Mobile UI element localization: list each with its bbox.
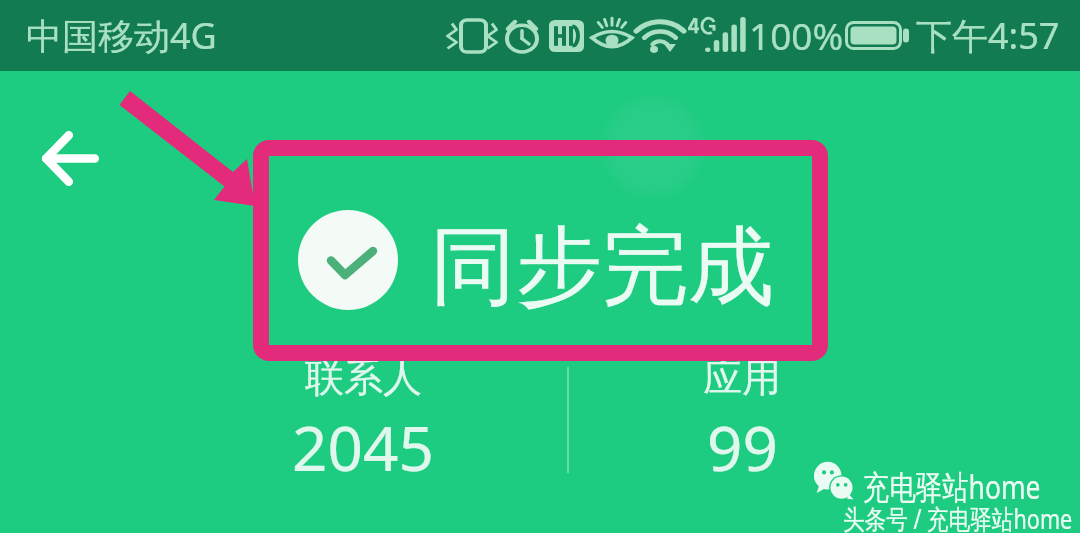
staticText: 99 xyxy=(707,405,778,478)
staticText: 应用 xyxy=(703,353,781,402)
staticText: 100% xyxy=(749,10,844,60)
staticText: 2045 xyxy=(292,405,434,478)
staticText: 头条号 / 充电驿站home xyxy=(843,500,1073,533)
button[interactable]: 应用 xyxy=(627,353,857,478)
staticText: 中国移动4G xyxy=(26,11,217,60)
staticText: 充电驿站home xyxy=(863,464,1041,509)
button[interactable]: Back xyxy=(22,110,118,206)
staticText: 联系人 xyxy=(305,353,422,402)
button[interactable]: 联系人 xyxy=(248,353,478,478)
staticText: 下午4:57 xyxy=(916,11,1060,60)
button[interactable]: 同步完成 xyxy=(298,200,778,320)
staticText: 同步完成 xyxy=(430,213,774,321)
